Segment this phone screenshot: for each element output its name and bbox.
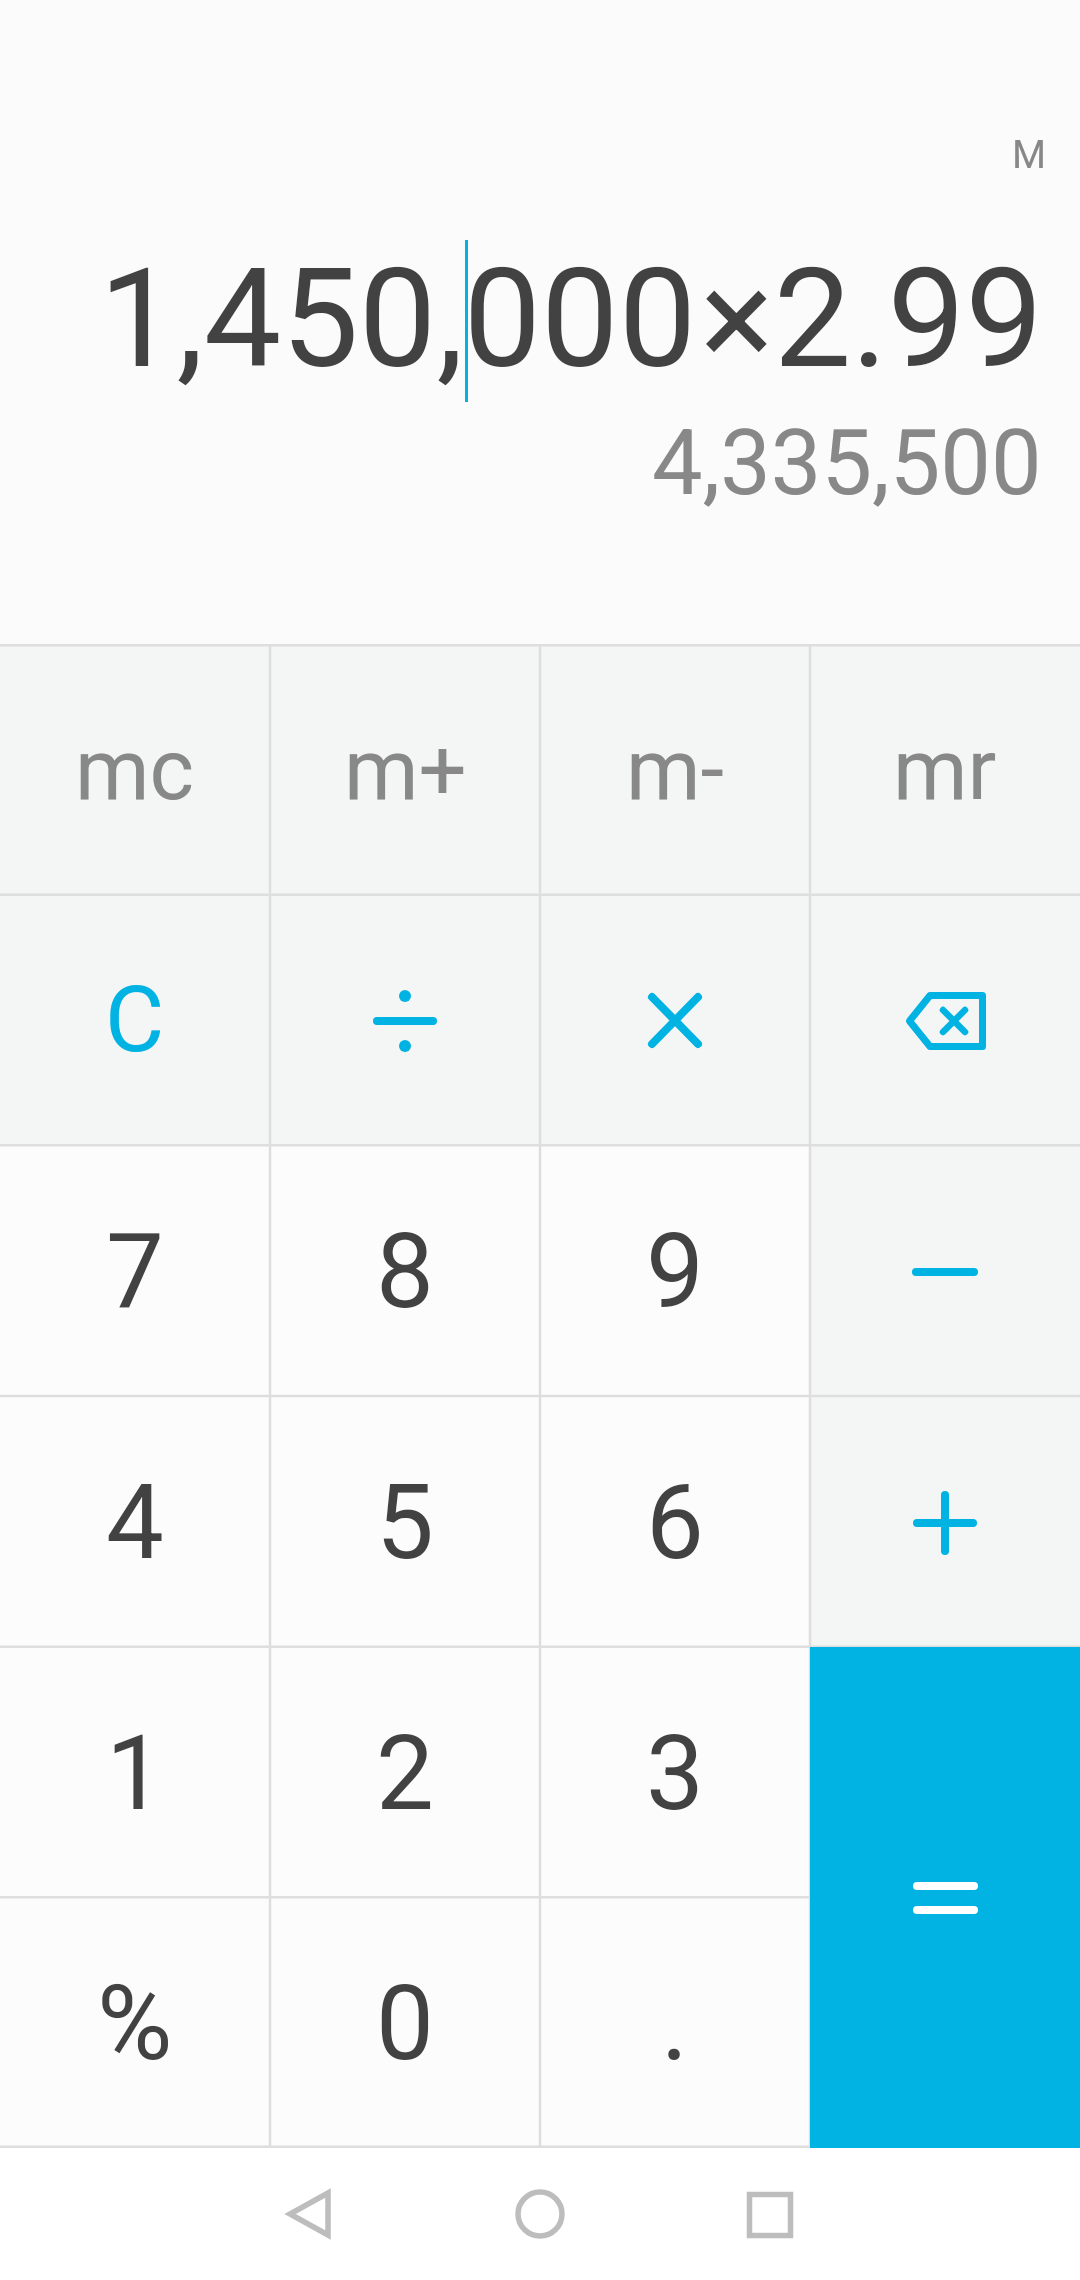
button[interactable]: 1	[0, 1648, 270, 1899]
staticText: 6	[646, 1462, 704, 1583]
button[interactable]: m+	[270, 644, 540, 895]
button[interactable]: 9	[540, 1146, 810, 1397]
staticText: 4	[106, 1462, 164, 1583]
staticText: .	[661, 1963, 689, 2084]
button[interactable]: Recent apps	[709, 2154, 829, 2274]
staticText: 5	[376, 1462, 434, 1583]
staticText: 2	[376, 1713, 434, 1834]
button[interactable]: Divide	[270, 895, 540, 1146]
staticText: mr	[893, 720, 997, 820]
other: Minus	[912, 1239, 978, 1305]
other: Plus	[913, 1491, 977, 1555]
button[interactable]: C	[0, 895, 270, 1146]
button[interactable]: mc	[0, 644, 270, 895]
staticText: 8	[376, 1211, 434, 1332]
button[interactable]: Home	[480, 2154, 600, 2274]
other: Divide	[373, 989, 437, 1053]
button[interactable]: 5	[270, 1397, 540, 1648]
button[interactable]: 3	[540, 1648, 810, 1899]
button[interactable]: m-	[540, 644, 810, 895]
button[interactable]: 4	[0, 1397, 270, 1648]
staticText: 9	[646, 1211, 704, 1332]
button[interactable]: Memory indicator	[994, 120, 1064, 190]
staticText: 7	[106, 1211, 164, 1332]
other: Backspace	[905, 992, 986, 1050]
button[interactable]: 6	[540, 1397, 810, 1648]
staticText: %	[97, 1963, 173, 2084]
button[interactable]: %	[0, 1899, 270, 2148]
staticText: 1,450,000	[99, 238, 697, 400]
staticText: M	[1012, 132, 1047, 178]
button[interactable]: 8	[270, 1146, 540, 1397]
staticText: C	[105, 967, 165, 1074]
staticText: mc	[75, 720, 195, 820]
button[interactable]: Multiply	[540, 895, 810, 1146]
button[interactable]: Back	[248, 2154, 368, 2274]
button[interactable]: Minus	[810, 1146, 1080, 1397]
staticText: ×2.99	[700, 238, 1043, 400]
button[interactable]: Equals	[810, 1647, 1080, 2148]
staticText: 0	[376, 1963, 434, 2084]
staticText: m+	[344, 720, 467, 820]
staticText: m-	[626, 720, 725, 820]
button[interactable]: mr	[810, 644, 1080, 895]
button[interactable]: 0	[270, 1899, 540, 2148]
other: Multiply	[648, 993, 702, 1048]
staticText: 1	[106, 1713, 164, 1834]
staticText: 3	[646, 1713, 704, 1834]
button[interactable]: 7	[0, 1146, 270, 1397]
button[interactable]: .	[540, 1899, 810, 2148]
button[interactable]: 2	[270, 1648, 540, 1899]
button[interactable]: Plus	[810, 1397, 1080, 1648]
button[interactable]: Backspace	[810, 895, 1080, 1146]
staticText: 4,335,500	[652, 411, 1042, 516]
